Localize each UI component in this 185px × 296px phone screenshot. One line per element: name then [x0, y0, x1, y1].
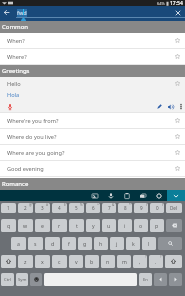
staticText: ,	[139, 258, 141, 265]
button[interactable]: 1	[1, 203, 16, 213]
staticText: n	[106, 258, 110, 265]
button[interactable]: Clipboard	[119, 190, 135, 201]
button[interactable]: Favourite	[170, 129, 185, 144]
button[interactable]: 6	[86, 203, 100, 213]
button[interactable]: i	[118, 219, 132, 232]
button[interactable]: Sym	[16, 273, 28, 286]
button[interactable]: When?	[0, 33, 185, 48]
button[interactable]: Ctrl	[1, 273, 14, 286]
button[interactable]: 4	[52, 203, 67, 213]
button[interactable]: x	[35, 255, 50, 268]
button[interactable]: Close search	[171, 6, 185, 21]
button[interactable]: 9	[134, 203, 148, 213]
button[interactable]: o	[134, 219, 148, 232]
staticText: x	[41, 258, 44, 265]
button[interactable]: ,	[133, 255, 147, 268]
button[interactable]: emoji	[30, 273, 42, 286]
button[interactable]: Stickers	[87, 190, 103, 201]
button[interactable]: Back	[0, 6, 12, 21]
button[interactable]: Favourite	[170, 33, 185, 48]
staticText: 9	[140, 205, 143, 211]
button[interactable]: l	[142, 237, 156, 250]
button[interactable]: 0	[150, 203, 164, 213]
button[interactable]: d	[45, 237, 60, 250]
button[interactable]: Settings	[151, 190, 167, 201]
staticText: &	[112, 203, 115, 207]
staticText: g	[83, 240, 87, 247]
staticText: (	[146, 203, 147, 207]
button[interactable]: Favourite	[170, 161, 185, 176]
button[interactable]: f	[62, 237, 76, 250]
staticText: Where do you live?	[7, 133, 170, 141]
staticText: e	[41, 222, 44, 229]
button[interactable]: Romance	[0, 178, 185, 190]
staticText: %	[80, 203, 83, 207]
button[interactable]: u	[102, 219, 116, 232]
button[interactable]: Favourite	[170, 49, 185, 64]
staticText: $	[64, 203, 66, 207]
button[interactable]: shift	[165, 255, 182, 268]
button[interactable]: 8	[118, 203, 132, 213]
button[interactable]: k	[126, 237, 140, 250]
button[interactable]: search	[158, 237, 182, 250]
button[interactable]: shift	[1, 255, 16, 268]
button[interactable]: Where're you from?	[0, 113, 185, 128]
button[interactable]: j	[110, 237, 124, 250]
staticText: 3	[41, 205, 44, 211]
button[interactable]: Record	[5, 102, 14, 111]
button[interactable]: Favourite	[170, 145, 185, 160]
button[interactable]: 3	[35, 203, 50, 213]
button[interactable]: Hello	[0, 77, 185, 90]
button[interactable]: p	[150, 219, 164, 232]
button[interactable]: y	[86, 219, 100, 232]
button[interactable]: a	[11, 237, 26, 250]
button[interactable]: r	[52, 219, 67, 232]
button[interactable]: Voice input	[103, 190, 119, 201]
button[interactable]: Edit	[154, 101, 165, 112]
button[interactable]: Hide keyboard	[167, 190, 185, 201]
button[interactable]: b	[85, 255, 99, 268]
button[interactable]: right	[169, 273, 182, 286]
button[interactable]	[16, 6, 185, 21]
staticText: v	[75, 258, 78, 265]
button[interactable]: bksp	[166, 219, 182, 232]
button[interactable]: More options	[176, 101, 185, 112]
staticText: s	[34, 240, 37, 247]
staticText: Romance	[2, 180, 29, 188]
button[interactable]: Where are you going?	[0, 145, 185, 160]
button[interactable]: h	[94, 237, 108, 250]
button[interactable]: Speak	[165, 101, 176, 112]
button[interactable]: w	[18, 219, 33, 232]
button[interactable]: t	[69, 219, 84, 232]
button[interactable]: Del	[166, 203, 182, 213]
staticText: 17:54	[170, 0, 183, 6]
staticText: k	[132, 240, 135, 247]
button[interactable]: Common	[0, 21, 185, 33]
staticText: Hello	[7, 80, 170, 88]
button[interactable]: .	[149, 255, 163, 268]
button[interactable]: Favourite	[170, 113, 185, 128]
button[interactable]: 7	[102, 203, 116, 213]
button[interactable]: En	[139, 273, 152, 286]
button[interactable]: 5	[69, 203, 84, 213]
button[interactable]: m	[117, 255, 131, 268]
button[interactable]: z	[18, 255, 33, 268]
button[interactable]	[44, 273, 137, 286]
button[interactable]: v	[69, 255, 83, 268]
button[interactable]: Themes	[135, 190, 151, 201]
button[interactable]: 2	[18, 203, 33, 213]
button[interactable]: Greetings	[0, 65, 185, 77]
staticText: )	[162, 203, 163, 207]
staticText: j	[116, 240, 118, 247]
button[interactable]: e	[35, 219, 50, 232]
button[interactable]: n	[101, 255, 115, 268]
button[interactable]: Where?	[0, 49, 185, 64]
button[interactable]: Good evening	[0, 161, 185, 176]
button[interactable]: Where do you live?	[0, 129, 185, 144]
button[interactable]: c	[52, 255, 67, 268]
button[interactable]: g	[78, 237, 92, 250]
button[interactable]: s	[28, 237, 43, 250]
button[interactable]: q	[1, 219, 16, 232]
button[interactable]: left	[154, 273, 167, 286]
button[interactable]: Favourite	[170, 77, 185, 90]
